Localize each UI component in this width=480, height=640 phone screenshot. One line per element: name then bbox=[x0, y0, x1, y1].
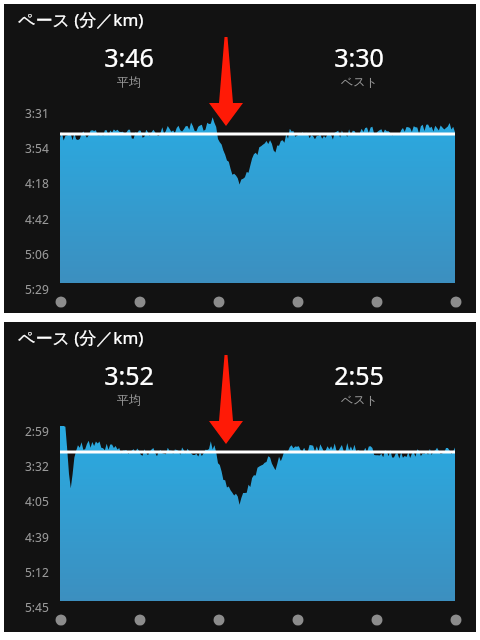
staticText: ベスト bbox=[341, 392, 378, 406]
staticText: 2:55 bbox=[334, 358, 384, 392]
staticText: 4:39 bbox=[25, 529, 49, 545]
staticText: 4:18 bbox=[25, 175, 49, 191]
staticText: 3:46 bbox=[104, 40, 154, 74]
other: Pace chart bbox=[4, 322, 476, 632]
button[interactable]: ペース (分／km) bbox=[4, 322, 476, 632]
button[interactable]: 3:46 bbox=[84, 40, 174, 88]
staticText: 3:30 bbox=[334, 40, 384, 74]
staticText: 4:05 bbox=[25, 493, 49, 509]
button[interactable]: ペース (分／km) bbox=[4, 4, 476, 313]
button[interactable]: 2:55 bbox=[314, 358, 404, 406]
staticText: 2:59 bbox=[25, 423, 49, 439]
staticText: 5:12 bbox=[25, 564, 49, 580]
staticText: 5:06 bbox=[25, 246, 49, 262]
staticText: 3:52 bbox=[104, 358, 154, 392]
other: Pace chart bbox=[4, 4, 476, 313]
staticText: 平均 bbox=[117, 74, 141, 88]
staticText: 3:32 bbox=[25, 458, 49, 474]
staticText: 平均 bbox=[117, 392, 141, 406]
staticText: 3:54 bbox=[25, 140, 49, 156]
button[interactable]: 3:30 bbox=[314, 40, 404, 88]
button[interactable]: 3:52 bbox=[84, 358, 174, 406]
staticText: 3:31 bbox=[25, 105, 49, 121]
staticText: ペース (分／km) bbox=[18, 8, 144, 31]
staticText: 4:42 bbox=[25, 211, 49, 227]
staticText: 5:45 bbox=[25, 599, 49, 615]
staticText: 5:29 bbox=[25, 281, 49, 297]
staticText: ペース (分／km) bbox=[18, 326, 144, 349]
staticText: ベスト bbox=[341, 74, 378, 88]
